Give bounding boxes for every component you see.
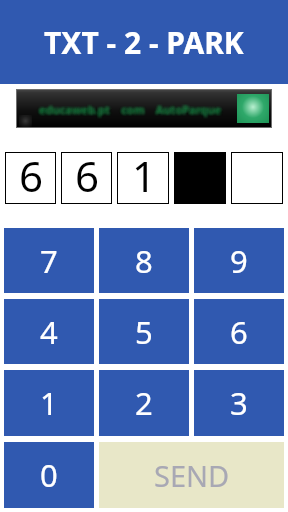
staticText: 6 [75,147,100,199]
button[interactable]: TXT - 2 - PARK [0,0,288,84]
button[interactable]: 6 [5,152,56,204]
staticText: educaweb.pt com AutoParque [40,104,223,119]
staticText: educaweb.pt com AutoParque [38,104,221,119]
staticText: 1 [40,382,58,424]
staticText: educaweb.pt com AutoParque [38,101,221,116]
staticText: 2 [135,382,153,424]
button[interactable]: 6 [61,152,112,204]
staticText: 5 [135,311,153,353]
staticText: 6 [19,147,44,199]
staticText: educaweb.pt com AutoParque [37,104,220,119]
button[interactable]: 9 [194,228,284,293]
staticText: 6 [230,311,248,353]
button[interactable]: 7 [4,228,94,293]
button[interactable]: Advertisement [16,89,272,128]
button[interactable]: 5 [99,299,189,364]
staticText: educaweb.pt com AutoParque [39,101,222,116]
staticText: educaweb.pt com AutoParque [42,102,225,117]
staticText: educaweb.pt com AutoParque [38,100,221,115]
button[interactable]: 8 [99,228,189,293]
staticText: 7 [40,240,58,282]
button[interactable]: 1 [4,370,94,436]
button[interactable]: 6 [194,299,284,364]
staticText: educaweb.pt com AutoParque [39,103,222,118]
staticText: 9 [230,240,248,282]
button[interactable]: 1 [117,152,169,204]
staticText: educaweb.pt com AutoParque [40,102,223,117]
staticText: SEND [154,456,230,495]
staticText: educaweb.pt com AutoParque [37,103,220,118]
button[interactable]: 4 [4,299,94,364]
button[interactable]: 2 [99,370,189,436]
button[interactable]: Open advert [237,94,269,123]
staticText: educaweb.pt com AutoParque [39,100,222,115]
staticText: 8 [135,240,153,282]
staticText: educaweb.pt com AutoParque [40,103,223,118]
staticText: 3 [230,382,248,424]
staticText: educaweb.pt com AutoParque [38,102,221,117]
button[interactable]: 3 [194,370,284,436]
staticText: TXT - 2 - PARK [44,22,244,63]
staticText: 1 [132,147,157,199]
staticText: educaweb.pt com AutoParque [37,102,220,117]
button[interactable]: SEND [99,442,284,508]
staticText: educaweb.pt com AutoParque [41,101,224,116]
staticText: educaweb.pt com AutoParque [37,100,220,115]
staticText: educaweb.pt com AutoParque [39,102,222,117]
staticText: educaweb.pt com AutoParque [41,104,224,119]
staticText: educaweb.pt com AutoParque [41,100,224,115]
button[interactable]: Empty character [231,152,283,204]
staticText: educaweb.pt com AutoParque [37,101,220,116]
staticText: educaweb.pt com AutoParque [40,100,223,115]
staticText: 4 [40,311,58,353]
button[interactable]: 0 [4,442,94,508]
staticText: educaweb.pt com AutoParque [36,102,219,117]
staticText: educaweb.pt com AutoParque [38,103,221,118]
staticText: educaweb.pt com AutoParque [41,102,224,117]
staticText: educaweb.pt com AutoParque [39,104,222,119]
staticText: educaweb.pt com AutoParque [40,101,223,116]
staticText: educaweb.pt com AutoParque [41,103,224,118]
staticText: 0 [40,454,58,496]
